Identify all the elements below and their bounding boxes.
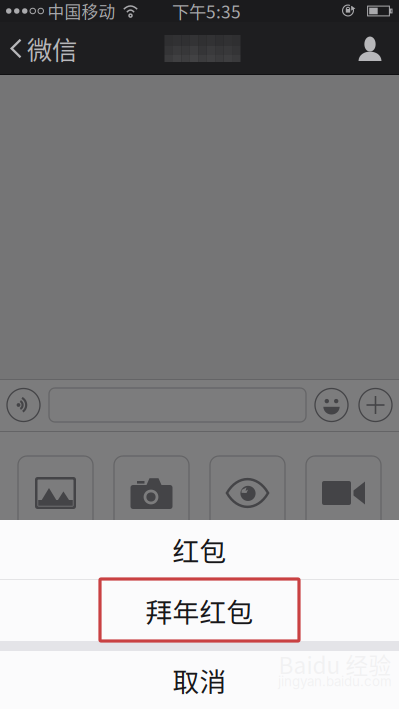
button[interactable]: Video call (210, 456, 285, 530)
button[interactable]: 拜年红包 (0, 580, 399, 641)
button[interactable]: Stickers (315, 388, 348, 421)
staticText: 微信 (27, 30, 77, 67)
button[interactable]: 红包 (0, 520, 399, 579)
staticText: 中国移动 (47, 0, 115, 23)
button[interactable]: Voice message (5, 388, 40, 421)
button[interactable]: Photos (18, 456, 93, 530)
staticText: 红包 (172, 530, 226, 569)
button[interactable]: Chat info (358, 29, 399, 68)
button[interactable]: 取消 (0, 651, 399, 709)
staticText: 拜年红包 (145, 591, 253, 630)
staticText: jingyan.baidu.com (278, 673, 392, 689)
button[interactable]: More (348, 388, 392, 421)
button[interactable]: Video (306, 456, 381, 530)
button[interactable]: 微信 (0, 23, 77, 74)
staticText: 下午5:35 (172, 0, 241, 24)
button[interactable]: Camera (114, 456, 189, 530)
staticText: Baidu 经验 (278, 648, 391, 680)
staticText: 取消 (172, 661, 226, 699)
